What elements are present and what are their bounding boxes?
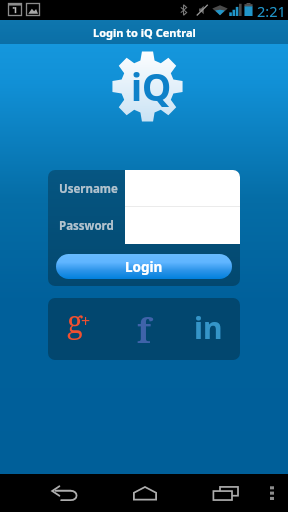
staticText: Password [59, 218, 114, 234]
staticText: iQ [131, 61, 172, 111]
button[interactable]: Sign in with LinkedIn [180, 306, 228, 352]
button[interactable]: Login [56, 254, 232, 279]
button[interactable]: Username field [125, 170, 240, 206]
staticText: g [67, 301, 84, 342]
staticText: Login to iQ Central [93, 25, 196, 40]
staticText: 2:21 [257, 1, 286, 21]
staticText: Login [125, 258, 163, 276]
button[interactable]: Recent apps [206, 474, 246, 512]
button[interactable]: More options [258, 474, 286, 512]
button[interactable]: Back [43, 474, 83, 512]
button[interactable]: Home [125, 474, 165, 512]
staticText: + [81, 310, 91, 332]
staticText: in [194, 307, 223, 348]
staticText: f [137, 307, 151, 353]
button[interactable]: Sign in with Google Plus [60, 306, 108, 352]
button[interactable]: Sign in with Facebook [120, 306, 168, 352]
staticText: Username [59, 181, 118, 197]
